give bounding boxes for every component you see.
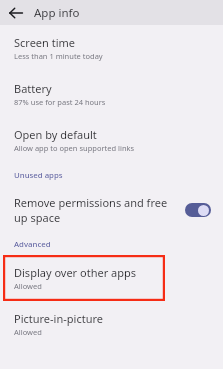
staticText: Display over other apps bbox=[14, 265, 137, 280]
staticText: 87% use for past 24 hours bbox=[14, 97, 106, 107]
staticText: Screen time bbox=[14, 35, 76, 50]
staticText: Open by default bbox=[14, 127, 97, 142]
staticText: Allowed bbox=[14, 327, 42, 337]
staticText: Advanced bbox=[14, 239, 51, 250]
button[interactable]: Remove permissions toggle bbox=[185, 203, 211, 217]
button[interactable]: Screen time bbox=[0, 25, 223, 71]
staticText: App info bbox=[34, 5, 80, 21]
staticText: Remove permissions and free up space bbox=[14, 195, 177, 225]
staticText: Allow app to open supported links bbox=[14, 143, 135, 153]
staticText: Unused apps bbox=[14, 170, 63, 181]
button[interactable]: Open by default bbox=[0, 117, 223, 163]
staticText: Battery bbox=[14, 81, 52, 96]
staticText: Less than 1 minute today bbox=[14, 51, 103, 61]
button[interactable]: Battery bbox=[0, 71, 223, 117]
button[interactable]: Remove permissions and free up space bbox=[0, 187, 223, 233]
button[interactable]: Picture-in-picture bbox=[0, 301, 223, 347]
staticText: Picture-in-picture bbox=[14, 311, 103, 326]
button[interactable]: Display over other apps bbox=[3, 255, 165, 301]
staticText: Allowed bbox=[14, 281, 42, 291]
button[interactable]: Back bbox=[6, 3, 25, 22]
